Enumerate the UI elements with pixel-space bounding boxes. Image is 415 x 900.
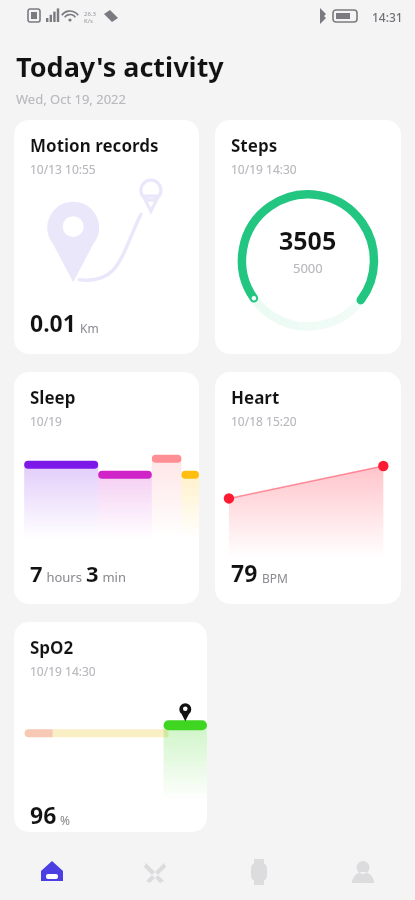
staticText: Sleep (30, 386, 76, 409)
staticText: min (99, 568, 126, 586)
staticText: BPM (262, 570, 288, 586)
staticText: 10/18 15:20 (231, 413, 297, 429)
staticText: 0.01 (30, 307, 76, 338)
staticText: 14:31 (372, 9, 403, 25)
staticText: 3 (86, 558, 99, 588)
button[interactable]: Heart (215, 372, 401, 604)
button[interactable]: Home (0, 844, 103, 900)
staticText: SpO2 (30, 636, 74, 659)
staticText: 10/19 14:30 (231, 161, 297, 177)
staticText: 10/13 10:55 (30, 161, 96, 177)
button[interactable]: Exercise (103, 844, 207, 900)
staticText: 96 (30, 799, 57, 830)
button[interactable]: SpO2 (14, 622, 207, 832)
staticText: % (57, 812, 71, 828)
staticText: 3505 (279, 223, 337, 257)
staticText: Motion records (30, 134, 159, 157)
button[interactable]: Steps (215, 120, 401, 354)
button[interactable]: Motion records (14, 120, 199, 354)
staticText: hours (43, 568, 86, 586)
button[interactable]: Sleep (14, 372, 199, 604)
button[interactable]: Watch (207, 844, 311, 900)
staticText: 10/19 (30, 413, 62, 429)
staticText: Km (80, 320, 99, 336)
staticText: 79 (231, 557, 258, 588)
staticText: Steps (231, 134, 278, 157)
staticText: Wed, Oct 19, 2022 (16, 90, 126, 108)
staticText: 26.3 K/s (84, 10, 96, 24)
staticText: 7 (30, 558, 43, 588)
staticText: 5000 (293, 259, 323, 277)
staticText: Today's activity (16, 48, 224, 85)
staticText: 10/19 14:30 (30, 663, 96, 679)
button[interactable]: Profile (311, 844, 415, 900)
staticText: Heart (231, 386, 280, 409)
